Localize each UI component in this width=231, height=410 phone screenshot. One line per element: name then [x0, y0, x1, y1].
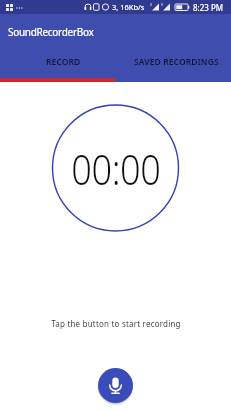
button[interactable]: RECORD: [0, 46, 115, 78]
staticText: RECORD: [46, 56, 81, 68]
staticText: 8:23 PM: [193, 2, 224, 13]
button[interactable]: [98, 368, 133, 403]
staticText: 3, 16Kb/s: [112, 2, 145, 12]
staticText: 00:00: [71, 140, 161, 197]
staticText: Tap the button to start recording: [51, 318, 181, 329]
staticText: SAVED RECORDINGS: [134, 56, 219, 68]
button[interactable]: SAVED RECORDINGS: [115, 46, 231, 78]
staticText: SoundRecorderBox: [8, 25, 94, 39]
